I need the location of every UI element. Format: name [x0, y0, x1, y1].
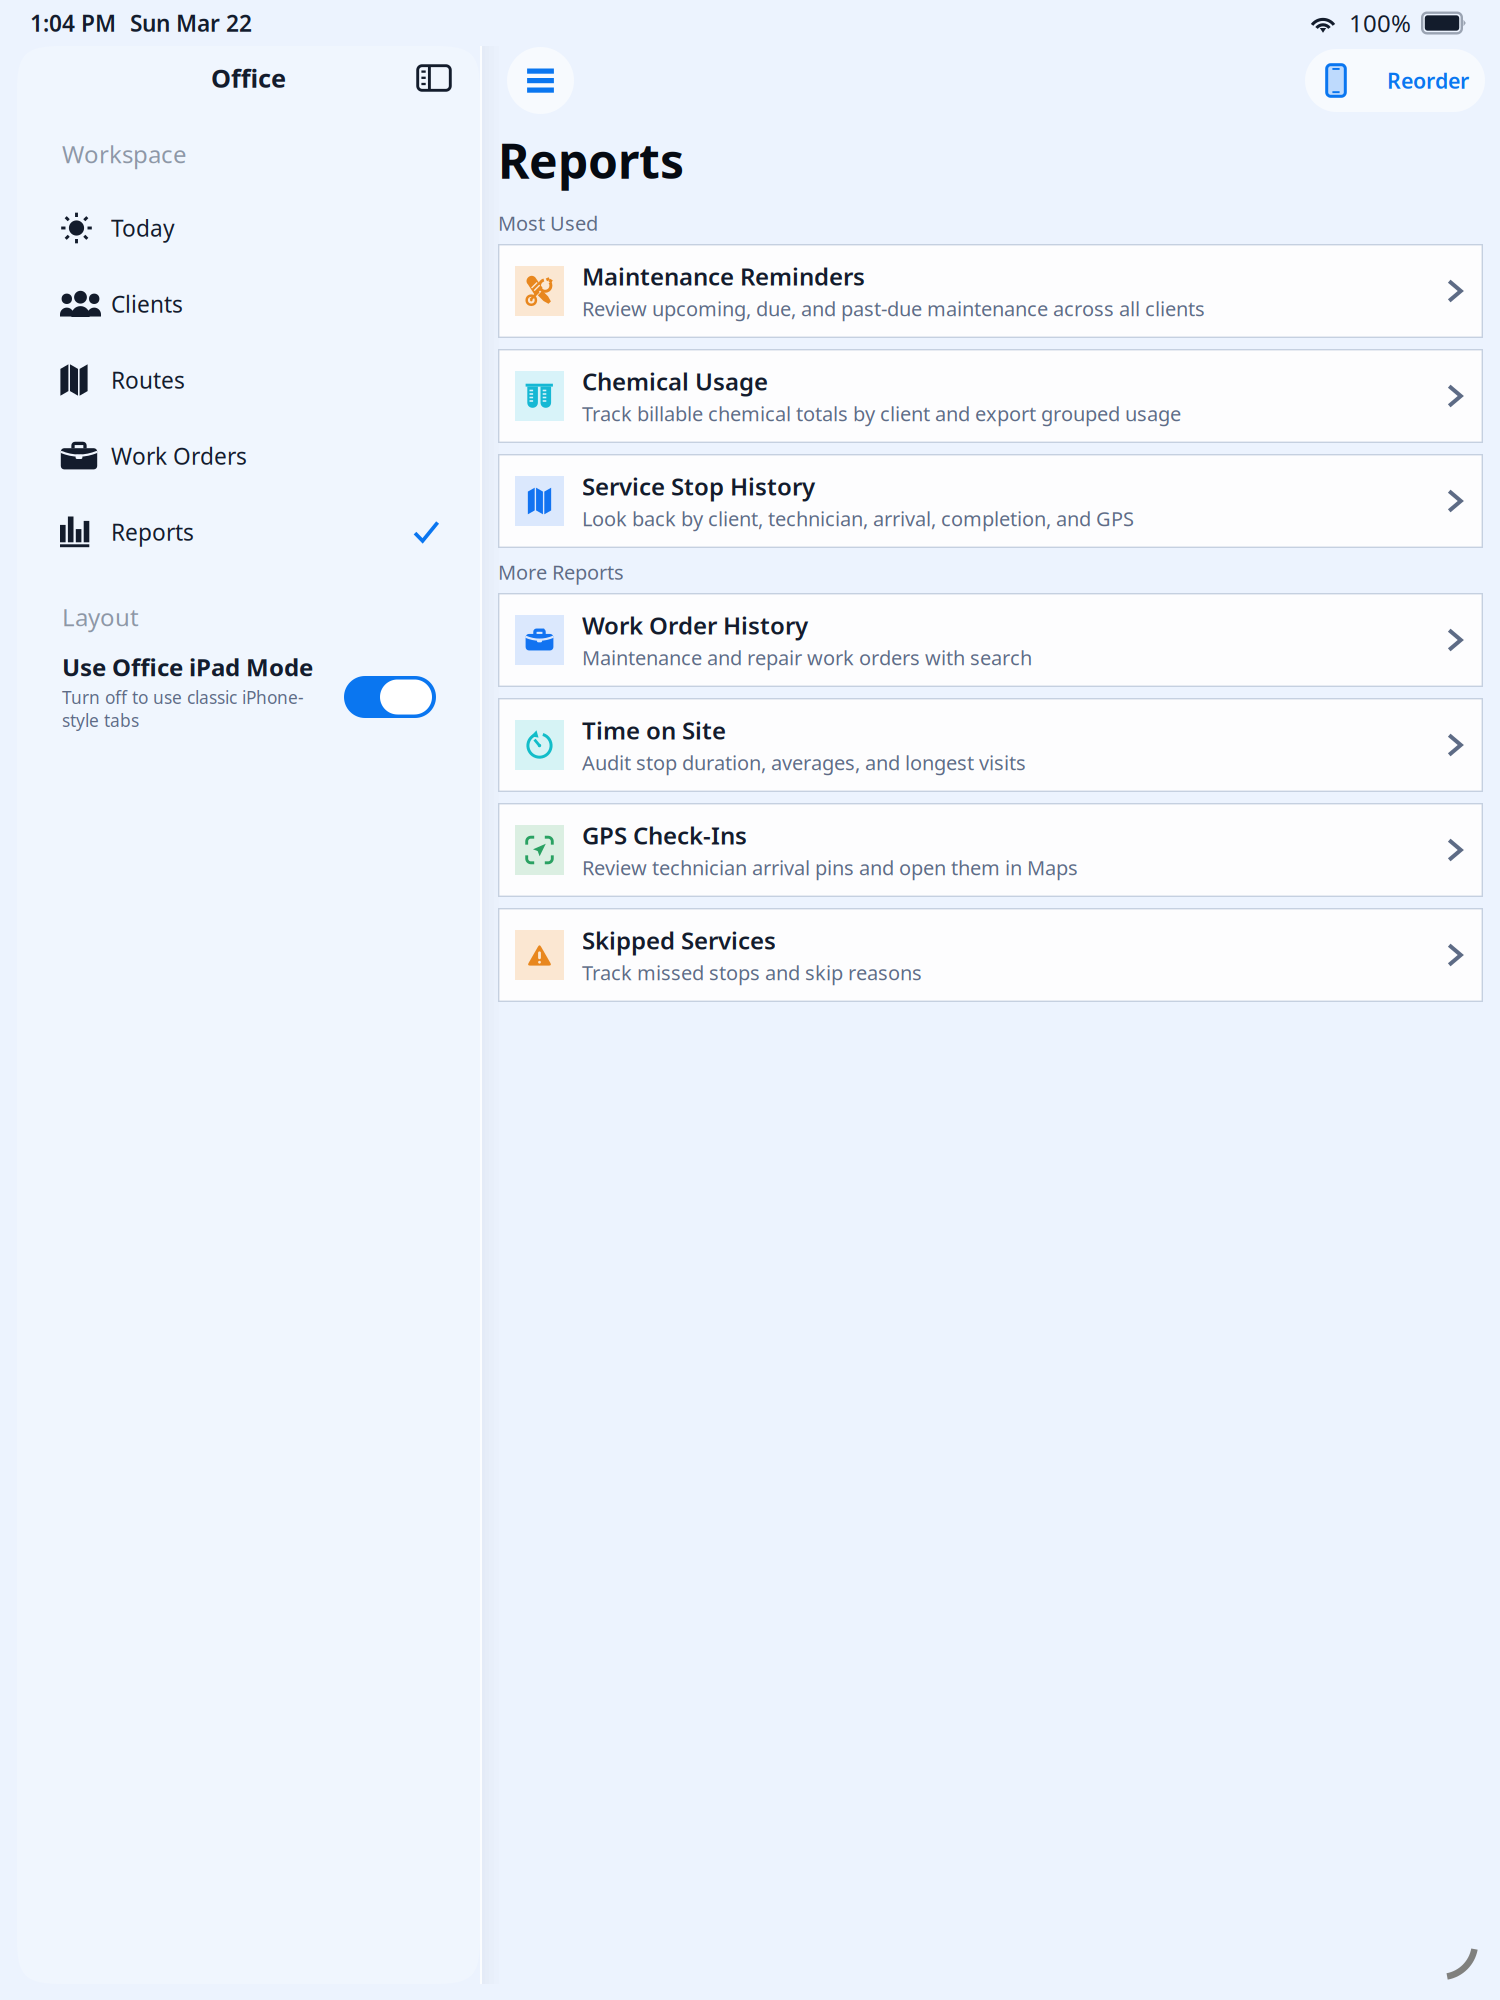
button[interactable]: Toggle Sidebar: [406, 50, 462, 106]
button[interactable]: Today: [17, 190, 480, 266]
staticText: Service Stop History: [582, 470, 815, 502]
staticText: Time on Site: [582, 714, 726, 746]
button[interactable]: GPS Check-Ins: [498, 803, 1483, 897]
staticText: Layout: [62, 601, 139, 633]
staticText: style tabs: [62, 709, 139, 732]
staticText: Work Order History: [582, 609, 808, 641]
staticText: Track missed stops and skip reasons: [582, 959, 922, 986]
staticText: Skipped Services: [582, 924, 776, 956]
staticText: Chemical Usage: [582, 365, 768, 397]
staticText: Look back by client, technician, arrival…: [582, 505, 1134, 532]
staticText: Maintenance and repair work orders with …: [582, 644, 1032, 671]
button[interactable]: Work Order History: [498, 593, 1483, 687]
staticText: More Reports: [498, 559, 624, 585]
staticText: Today: [111, 213, 175, 243]
button[interactable]: Service Stop History: [498, 454, 1483, 548]
staticText: Office: [211, 61, 286, 95]
staticText: Clients: [111, 289, 183, 319]
staticText: Routes: [111, 365, 185, 395]
button[interactable]: Reports: [17, 494, 480, 570]
button[interactable]: Reorder: [1305, 49, 1485, 112]
staticText: Turn off to use classic iPhone-: [62, 686, 304, 709]
button[interactable]: Use Office iPad Mode: [17, 635, 480, 732]
staticText: Reorder: [1387, 66, 1469, 95]
staticText: Review upcoming, due, and past-due maint…: [582, 295, 1205, 322]
button[interactable]: Show Sidebar: [507, 47, 574, 114]
staticText: Use Office iPad Mode: [62, 651, 313, 683]
staticText: GPS Check-Ins: [582, 819, 747, 851]
staticText: Review technician arrival pins and open …: [582, 854, 1078, 881]
staticText: Maintenance Reminders: [582, 260, 865, 292]
button[interactable]: Routes: [17, 342, 480, 418]
staticText: Audit stop duration, averages, and longe…: [582, 749, 1026, 776]
staticText: Sun Mar 22: [130, 8, 252, 38]
button[interactable]: Chemical Usage: [498, 349, 1483, 443]
button[interactable]: Clients: [17, 266, 480, 342]
staticText: Reports: [498, 128, 684, 192]
button[interactable]: Skipped Services: [498, 908, 1483, 1002]
staticText: 100%: [1349, 7, 1411, 39]
button[interactable]: Time on Site: [498, 698, 1483, 792]
button[interactable]: Maintenance Reminders: [498, 244, 1483, 338]
staticText: Work Orders: [111, 441, 247, 471]
button[interactable]: Work Orders: [17, 418, 480, 494]
staticText: Reports: [111, 517, 194, 547]
staticText: 1:04 PM: [30, 8, 116, 38]
staticText: Most Used: [498, 210, 598, 236]
staticText: Workspace: [62, 138, 187, 170]
staticText: Track billable chemical totals by client…: [582, 400, 1181, 427]
